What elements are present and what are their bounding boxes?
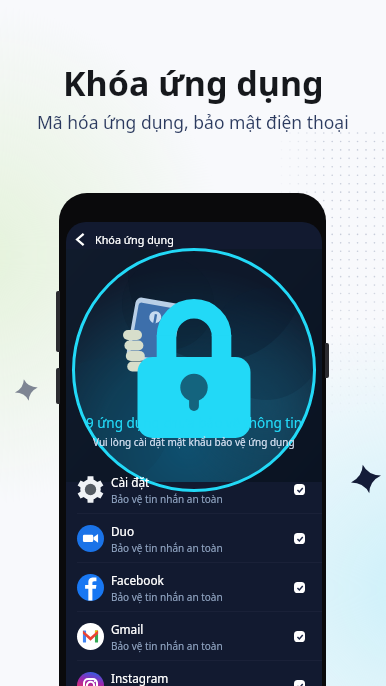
- staticText: Vui lòng cài đặt mật khẩu bảo vệ ứng dụn…: [93, 435, 295, 449]
- other: Protected: [294, 484, 305, 495]
- other: Protected: [294, 631, 305, 642]
- staticText: Facebook: [111, 572, 164, 588]
- staticText: Mã hóa ứng dụng, bảo mật điện thoại: [37, 110, 349, 134]
- staticText: Instagram: [111, 670, 169, 686]
- button[interactable]: Duo: [66, 514, 322, 563]
- staticText: Khóa ứng dụng: [63, 60, 324, 106]
- other: Protected: [294, 582, 305, 593]
- staticText: Bảo vệ tin nhắn an toàn: [111, 541, 223, 555]
- staticText: Cài đặt: [111, 474, 150, 490]
- staticText: Duo: [111, 523, 135, 539]
- staticText: Khóa ứng dụng: [95, 232, 174, 247]
- button[interactable]: Back: [66, 225, 95, 254]
- staticText: Bảo vệ tin nhắn an toàn: [111, 492, 223, 506]
- other: Protected: [294, 533, 305, 544]
- button[interactable]: Gmail: [66, 612, 322, 661]
- staticText: Bảo vệ tin nhắn an toàn: [111, 590, 223, 604]
- button[interactable]: Facebook: [66, 563, 322, 612]
- staticText: Gmail: [111, 621, 144, 637]
- staticText: 9 ứng dụng chưa bảo vệ thông tin: [86, 414, 303, 432]
- other: Protected: [294, 680, 305, 686]
- button[interactable]: Instagram: [66, 661, 322, 686]
- staticText: Bảo vệ tin nhắn an toàn: [111, 639, 223, 653]
- button[interactable]: Cài đặt: [66, 465, 322, 514]
